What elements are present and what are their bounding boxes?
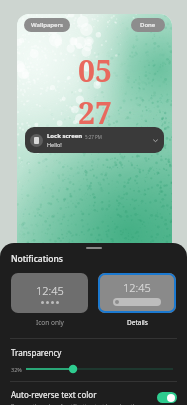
- button[interactable]: Auto-reverse text color toggle: [157, 392, 177, 403]
- button[interactable]: Auto-reverse text color: [0, 389, 187, 405]
- button[interactable]: Wallpapers: [24, 18, 70, 32]
- staticText: 05: [78, 50, 112, 91]
- staticText: Tue, October 25: [72, 137, 118, 145]
- button[interactable]: 32%: [11, 363, 173, 375]
- staticText: 32%: [11, 366, 22, 373]
- staticText: Hello!: [47, 141, 62, 148]
- staticText: Reverse the color of notification text b…: [11, 402, 151, 405]
- staticText: 12:45: [36, 283, 64, 298]
- button[interactable]: Done: [131, 18, 165, 32]
- staticText: Lock screen: [47, 132, 83, 140]
- staticText: Details: [127, 318, 148, 327]
- staticText: Icon only: [36, 318, 64, 327]
- staticText: Transparency: [11, 347, 62, 358]
- staticText: Done: [140, 21, 156, 29]
- staticText: Notifications: [11, 253, 63, 265]
- staticText: 5:27 PM: [85, 134, 102, 140]
- staticText: Auto-reverse text color: [11, 389, 97, 400]
- staticText: 12:45: [123, 280, 151, 295]
- button[interactable]: 12:45: [98, 273, 176, 327]
- staticText: Wallpapers: [31, 21, 63, 29]
- button[interactable]: Lock screen: [25, 127, 164, 153]
- staticText: 27: [78, 92, 112, 133]
- button[interactable]: 12:45: [11, 273, 88, 327]
